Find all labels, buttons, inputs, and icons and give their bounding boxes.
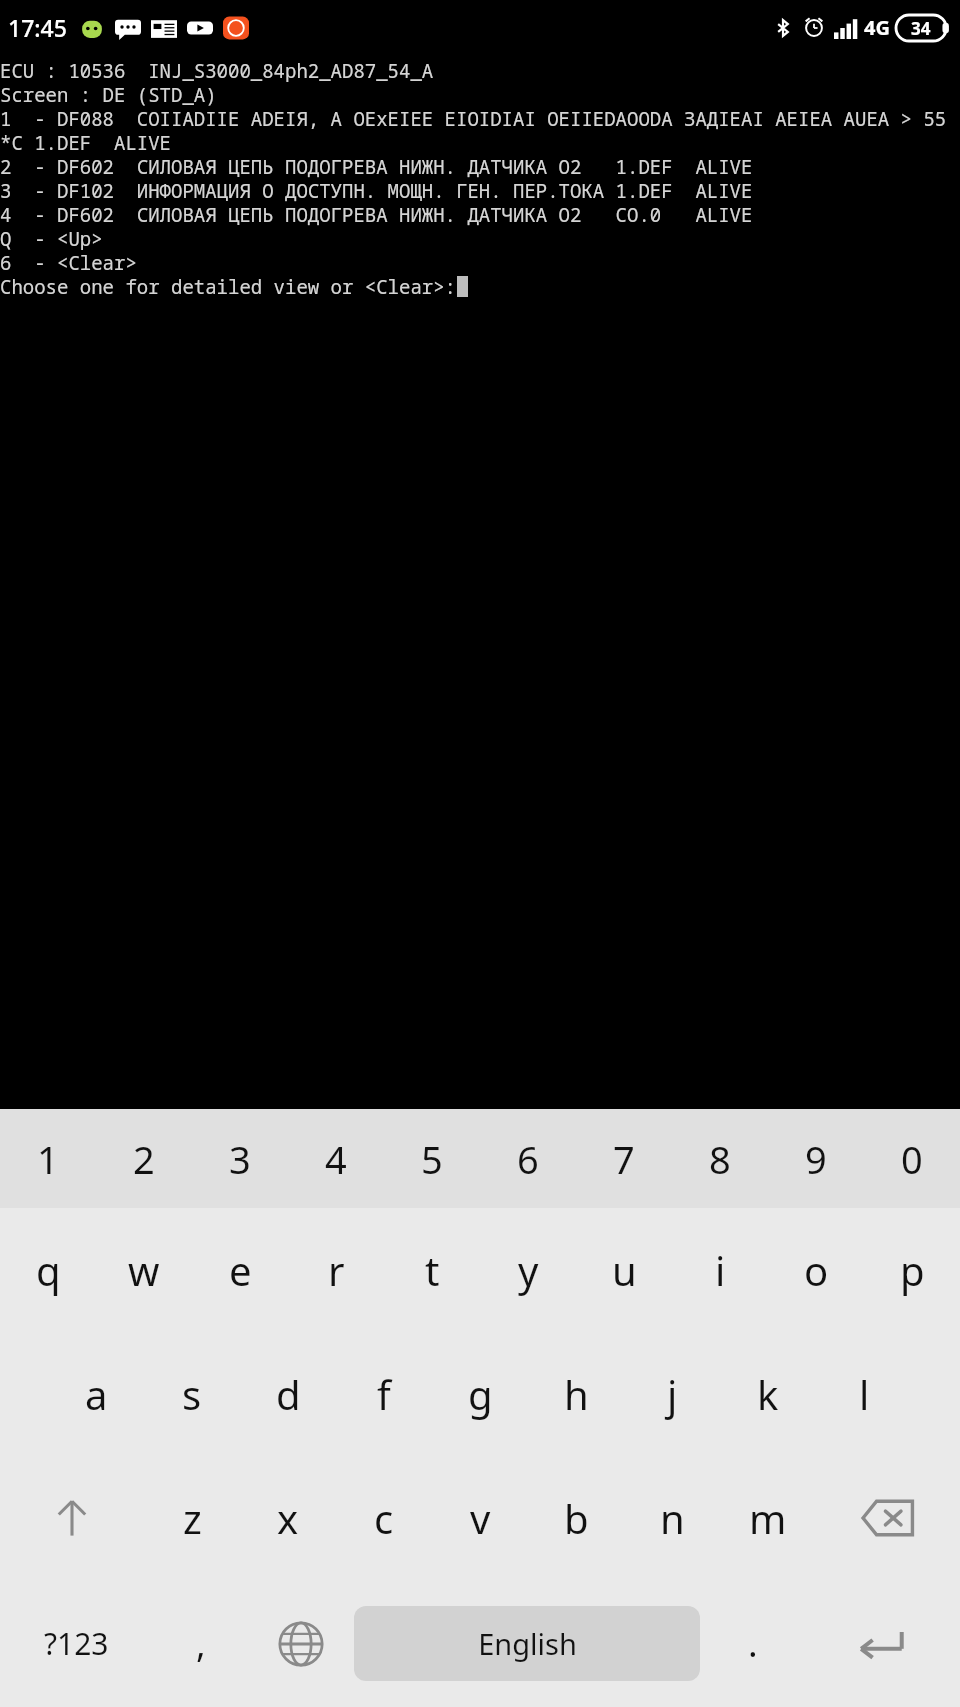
staticText: ?123 <box>44 1623 109 1664</box>
staticText: . <box>748 1619 758 1668</box>
button[interactable]: l <box>816 1332 912 1456</box>
button[interactable]: x <box>240 1456 336 1580</box>
button[interactable]: u <box>576 1208 672 1332</box>
staticText: 6 <box>517 1133 539 1185</box>
button[interactable]: English <box>354 1606 700 1681</box>
button[interactable]: q <box>0 1208 96 1332</box>
staticText: 6 - <Clear> <box>0 250 960 274</box>
button[interactable]: r <box>288 1208 384 1332</box>
button[interactable]: d <box>240 1332 336 1456</box>
button[interactable]: Backspace <box>816 1456 960 1580</box>
staticText: o <box>804 1243 829 1297</box>
button[interactable]: c <box>336 1456 432 1580</box>
staticText: r <box>328 1243 345 1297</box>
button[interactable]: n <box>624 1456 720 1580</box>
button[interactable]: Shift <box>0 1456 144 1580</box>
staticText: w <box>128 1243 160 1297</box>
staticText: *C 1.DEF ALIVE <box>0 130 960 154</box>
staticText: 3 <box>229 1133 251 1185</box>
staticText: c <box>374 1491 394 1545</box>
staticText: m <box>749 1491 787 1545</box>
staticText: k <box>757 1367 779 1421</box>
button[interactable]: m <box>720 1456 816 1580</box>
button[interactable]: i <box>672 1208 768 1332</box>
staticText: d <box>276 1367 301 1421</box>
staticText: y <box>518 1243 539 1297</box>
button[interactable]: ?123 <box>0 1580 153 1707</box>
button[interactable]: e <box>192 1208 288 1332</box>
button[interactable]: a <box>48 1332 144 1456</box>
staticText: 7 <box>613 1133 635 1185</box>
staticText: n <box>660 1491 685 1545</box>
button[interactable]: b <box>528 1456 624 1580</box>
button[interactable]: t <box>384 1208 480 1332</box>
staticText: t <box>425 1243 440 1297</box>
button[interactable]: 7 <box>576 1109 672 1208</box>
staticText: j <box>667 1367 678 1421</box>
button[interactable]: 1 <box>0 1109 96 1208</box>
staticText: g <box>468 1367 493 1421</box>
staticText: l <box>859 1367 870 1421</box>
button[interactable]: 8 <box>672 1109 768 1208</box>
staticText: 2 <box>133 1133 155 1185</box>
staticText: p <box>900 1243 925 1297</box>
staticText: Q - <Up> <box>0 226 960 250</box>
button[interactable]: 2 <box>96 1109 192 1208</box>
button[interactable]: 4 <box>288 1109 384 1208</box>
staticText: h <box>564 1367 589 1421</box>
button[interactable]: h <box>528 1332 624 1456</box>
staticText: a <box>85 1367 108 1421</box>
button[interactable]: p <box>864 1208 960 1332</box>
button[interactable]: y <box>480 1208 576 1332</box>
staticText: z <box>183 1491 202 1545</box>
button[interactable]: 0 <box>864 1109 960 1208</box>
staticText: 4 - DF602 СИЛОВАЯ ЦЕПЬ ПОДОГРЕВА НИЖН. Д… <box>0 202 960 226</box>
staticText: u <box>612 1243 637 1297</box>
button[interactable]: w <box>96 1208 192 1332</box>
button[interactable]: v <box>432 1456 528 1580</box>
staticText: 0 <box>901 1133 923 1185</box>
staticText: ECU : 10536 INJ_S3000_84ph2_AD87_54_A <box>0 58 960 82</box>
staticText: i <box>715 1243 726 1297</box>
button[interactable]: Enter <box>806 1580 960 1707</box>
staticText: 1 <box>37 1133 59 1185</box>
staticText: 2 - DF602 СИЛОВАЯ ЦЕПЬ ПОДОГРЕВА НИЖН. Д… <box>0 154 960 178</box>
staticText: q <box>36 1243 61 1297</box>
button[interactable]: , <box>153 1580 248 1707</box>
button[interactable]: g <box>432 1332 528 1456</box>
staticText: s <box>182 1367 202 1421</box>
staticText: Screen : DE (STD_A) <box>0 82 960 106</box>
staticText: 5 <box>421 1133 443 1185</box>
staticText: , <box>196 1619 206 1668</box>
button[interactable]: k <box>720 1332 816 1456</box>
button[interactable]: 9 <box>768 1109 864 1208</box>
button[interactable]: s <box>144 1332 240 1456</box>
button[interactable]: 3 <box>192 1109 288 1208</box>
staticText: Choose one for detailed view or <Clear>: <box>0 274 457 298</box>
staticText: f <box>377 1367 391 1421</box>
staticText: 1 - DF088 COIIADIIE ADEIЯ, A OExEIEE EIO… <box>0 106 960 130</box>
staticText: 4G <box>864 14 890 41</box>
button[interactable]: Change language <box>248 1580 354 1707</box>
button[interactable]: 6 <box>480 1109 576 1208</box>
button[interactable]: . <box>700 1580 806 1707</box>
staticText: x <box>277 1491 299 1545</box>
button[interactable]: 5 <box>384 1109 480 1208</box>
staticText: 17:45 <box>8 12 67 43</box>
staticText: b <box>564 1491 589 1545</box>
button[interactable]: f <box>336 1332 432 1456</box>
staticText: 9 <box>805 1133 827 1185</box>
staticText: 3 - DF102 ИНФОРМАЦИЯ О ДОСТУПН. МОЩН. ГЕ… <box>0 178 960 202</box>
staticText: 8 <box>709 1133 731 1185</box>
button[interactable]: z <box>144 1456 240 1580</box>
staticText: 34 <box>911 17 931 40</box>
staticText: v <box>470 1491 491 1545</box>
button[interactable]: o <box>768 1208 864 1332</box>
button[interactable]: j <box>624 1332 720 1456</box>
staticText: e <box>229 1243 252 1297</box>
staticText: 4 <box>325 1133 347 1185</box>
staticText: English <box>478 1624 577 1663</box>
